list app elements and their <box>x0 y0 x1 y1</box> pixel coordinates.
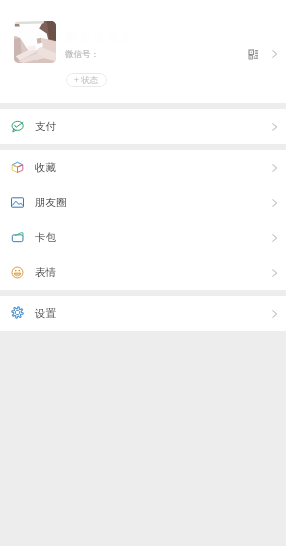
button[interactable]: 陈 先 生 先 生 <box>0 0 286 103</box>
staticText: 微信号： <box>65 49 99 60</box>
button[interactable]: + 状态 <box>66 73 107 87</box>
staticText: + 状态 <box>74 74 99 86</box>
button[interactable]: 支付 <box>0 109 286 144</box>
staticText: 支付 <box>35 120 56 133</box>
staticText: 朋友圈 <box>35 196 67 209</box>
button[interactable]: 设置 <box>0 296 286 331</box>
button[interactable]: 表情 <box>0 255 286 290</box>
button[interactable]: Profile details <box>266 46 282 62</box>
staticText: 设置 <box>35 307 56 320</box>
staticText: 卡包 <box>35 231 56 244</box>
button[interactable]: My QR code <box>245 46 262 63</box>
button[interactable]: 朋友圈 <box>0 185 286 220</box>
button[interactable]: 卡包 <box>0 220 286 255</box>
staticText: 收藏 <box>35 161 56 174</box>
button[interactable]: 收藏 <box>0 150 286 185</box>
staticText: 表情 <box>35 266 56 279</box>
